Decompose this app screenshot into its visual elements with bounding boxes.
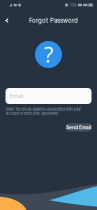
button[interactable]: Send Email — [65, 123, 91, 131]
staticText: Send Email — [66, 125, 91, 130]
staticText: Enter the email address associated with … — [5, 107, 81, 112]
staticText: ? — [44, 40, 53, 69]
staticText: Forgot Password — [29, 17, 78, 24]
staticText: account to reset your password — [5, 111, 57, 116]
button[interactable]: Back — [2, 15, 12, 25]
staticText: 75% — [70, 2, 77, 8]
staticText: Email — [9, 92, 22, 100]
